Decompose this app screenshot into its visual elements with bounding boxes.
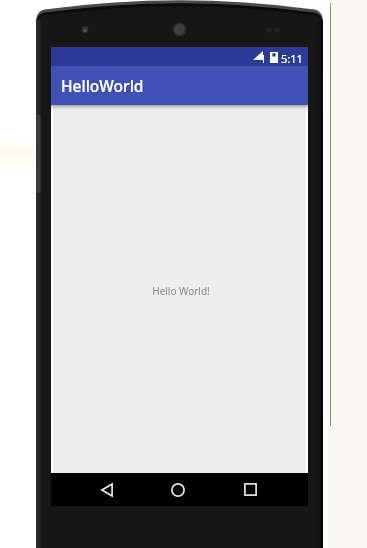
button[interactable]: HelloWorld (51, 66, 308, 105)
button[interactable]: Recent apps (232, 473, 268, 506)
button[interactable]: Home (160, 473, 196, 506)
button[interactable]: Back (89, 473, 125, 506)
staticText: HelloWorld (61, 75, 144, 96)
staticText: Hello World! (152, 284, 210, 298)
staticText: 5:11 (281, 51, 303, 66)
